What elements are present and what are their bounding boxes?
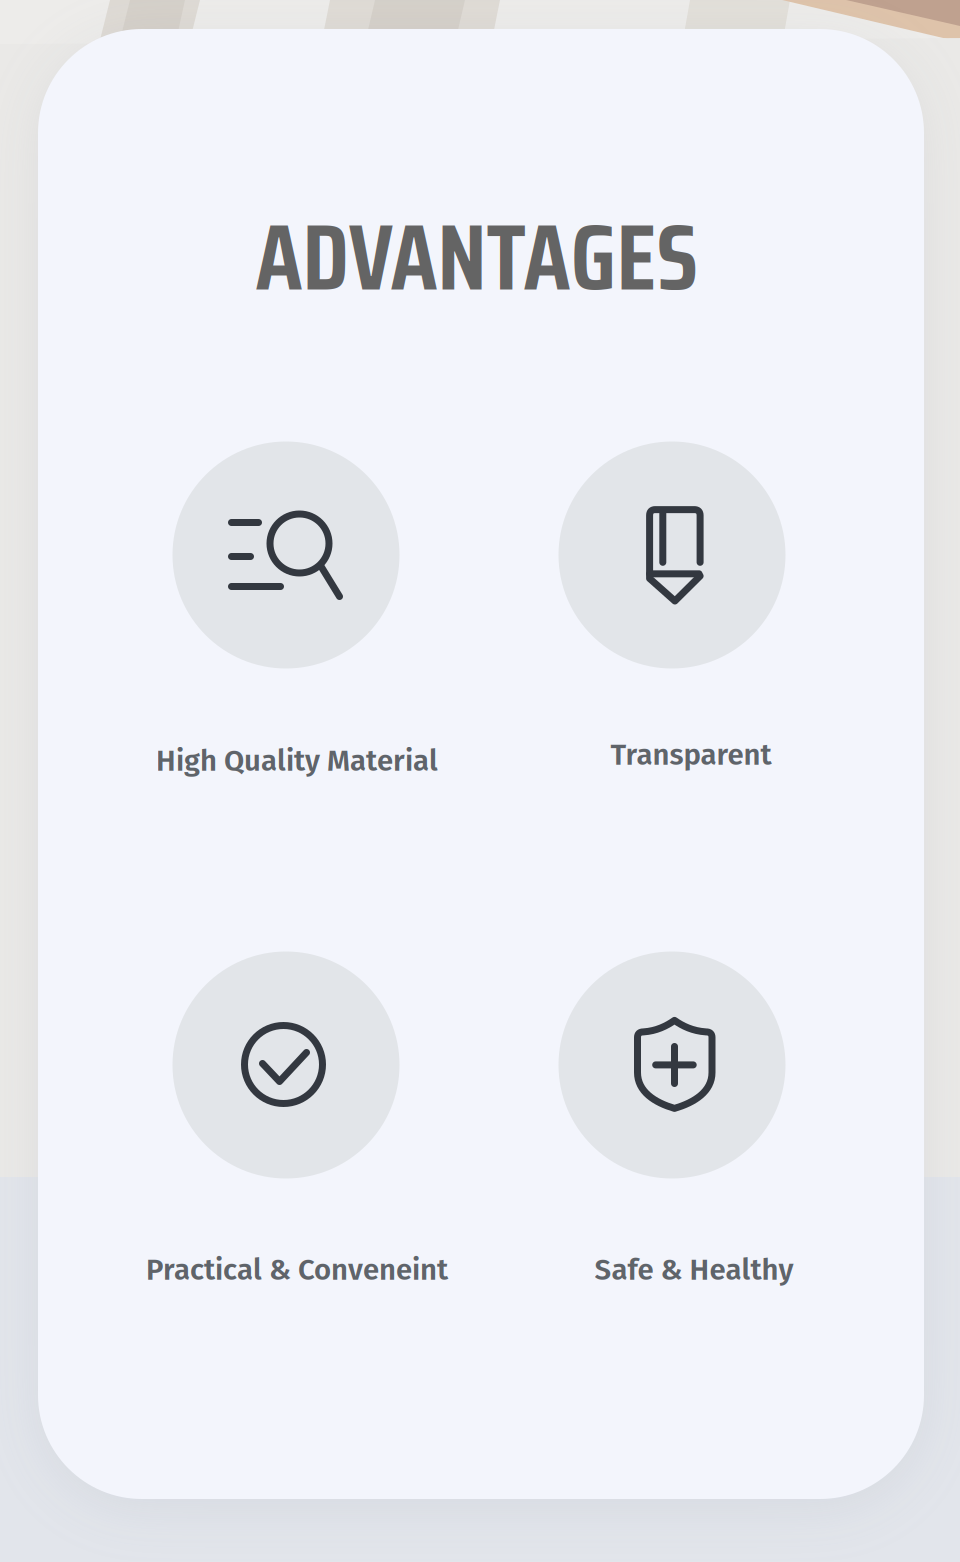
button[interactable]: Safe & Healthy — [558, 951, 785, 1178]
staticText: High Quality Material — [156, 743, 438, 779]
staticText: ADVANTAGES — [255, 183, 698, 330]
button[interactable]: Transparent — [558, 441, 785, 668]
staticText: Transparent — [610, 737, 771, 773]
staticText: Practical & Conveneint — [146, 1252, 448, 1288]
button[interactable]: High Quality Material — [172, 441, 399, 668]
staticText: Safe & Healthy — [594, 1252, 793, 1288]
button[interactable]: Practical & Conveneint — [172, 951, 399, 1178]
